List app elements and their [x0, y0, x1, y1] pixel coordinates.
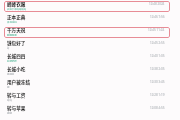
- button[interactable]: 正本正典: [4, 14, 170, 25]
- staticText: 12:45 11:24: [148, 28, 165, 32]
- staticText: 12:08 4:55: [150, 106, 165, 110]
- staticText: 正本正典: [7, 14, 26, 21]
- staticText: 嗯嗯: [7, 112, 12, 115]
- staticText: 12:40 1:05: [150, 54, 165, 58]
- staticText: 峰峰衣服: [7, 1, 26, 8]
- button[interactable]: 峰峰衣服: [4, 1, 170, 12]
- button[interactable]: 钱包好了: [4, 40, 170, 51]
- button[interactable]: 转与工资: [4, 92, 170, 103]
- staticText: 转与苹果: [7, 105, 26, 112]
- button[interactable]: 长城小吃: [4, 66, 170, 77]
- button[interactable]: 用户被冻结: [4, 79, 170, 90]
- staticText: 12:28 1:19: [150, 93, 165, 97]
- staticText: 哈: [7, 47, 10, 50]
- staticText: 12:48 2024: [149, 2, 165, 6]
- button[interactable]: 长城四四: [4, 53, 170, 64]
- staticText: 库存吗吗: [7, 21, 17, 24]
- staticText: 12:46 7:56: [150, 15, 165, 19]
- staticText: 长城四四: [7, 53, 26, 60]
- staticText: 哦哦哦: [7, 73, 15, 76]
- staticText: 转与工资: [7, 92, 26, 99]
- staticText: 好吧吧吧: [7, 60, 17, 63]
- button[interactable]: 千万天祝: [4, 27, 170, 38]
- staticText: 12:38 2:05: [150, 67, 165, 71]
- staticText: 啊啊啊啊: [7, 34, 17, 37]
- staticText: 钱包好了: [7, 40, 26, 47]
- staticText: 嗯: [7, 86, 10, 89]
- staticText: 用户被冻结: [7, 79, 30, 86]
- staticText: 啦啦: [7, 99, 12, 102]
- staticText: 12:30 3:45: [150, 80, 165, 84]
- staticText: 衣服下单啦啦啦啦: [7, 8, 27, 11]
- staticText: 12:45 2:55: [150, 41, 165, 45]
- staticText: 长城小吃: [7, 66, 26, 73]
- button[interactable]: 转与苹果: [4, 105, 170, 116]
- staticText: 千万天祝: [7, 27, 26, 34]
